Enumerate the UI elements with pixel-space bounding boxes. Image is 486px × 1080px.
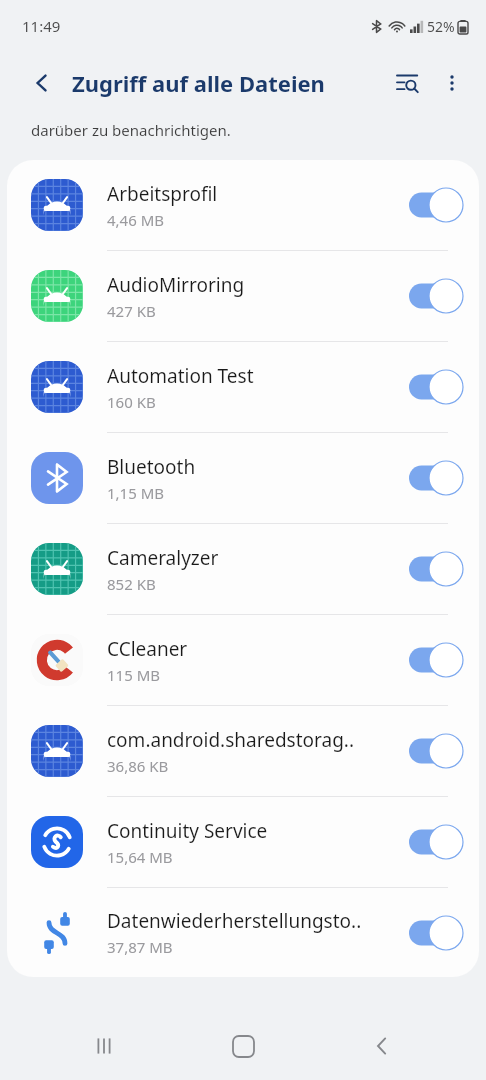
staticText: Bluetooth xyxy=(107,454,196,480)
button[interactable]: Datenwiederherstellungsto.. xyxy=(7,888,479,977)
button[interactable]: Automation Test xyxy=(7,342,479,432)
staticText: 1,15 MB xyxy=(107,483,165,503)
staticText: CCleaner xyxy=(107,636,188,662)
button[interactable]: Toggle AudioMirroring xyxy=(403,272,469,320)
button[interactable]: Search list xyxy=(388,63,428,103)
staticText: 15,64 MB xyxy=(107,847,173,867)
button[interactable]: Back xyxy=(22,63,62,103)
button[interactable]: Toggle Automation Test xyxy=(403,363,469,411)
button[interactable]: Cameralyzer xyxy=(7,524,479,614)
staticText: Zugriff auf alle Dateien xyxy=(72,68,325,98)
button[interactable]: Toggle Continuity Service xyxy=(403,818,469,866)
button[interactable]: Back xyxy=(356,1020,408,1072)
staticText: Datenwiederherstellungsto.. xyxy=(107,908,362,934)
staticText: Cameralyzer xyxy=(107,545,219,571)
staticText: 11:49 xyxy=(22,16,61,36)
staticText: 427 KB xyxy=(107,301,156,321)
button[interactable]: Home xyxy=(217,1020,269,1072)
button[interactable]: Toggle com.android.sharedstorag.. xyxy=(403,727,469,775)
staticText: com.android.sharedstorag.. xyxy=(107,727,355,753)
button[interactable]: Toggle Cameralyzer xyxy=(403,545,469,593)
staticText: Automation Test xyxy=(107,363,254,389)
staticText: 52% xyxy=(427,17,455,36)
button[interactable]: Toggle Datenwiederherstellungsto.. xyxy=(403,909,469,957)
button[interactable]: Recent apps xyxy=(78,1020,130,1072)
button[interactable]: Toggle Bluetooth xyxy=(403,454,469,502)
button[interactable]: AudioMirroring xyxy=(7,251,479,341)
staticText: 852 KB xyxy=(107,574,156,594)
button[interactable]: Toggle Arbeitsprofil xyxy=(403,181,469,229)
staticText: 160 KB xyxy=(107,392,156,412)
staticText: 4,46 MB xyxy=(107,210,165,230)
staticText: 37,87 MB xyxy=(107,937,173,957)
staticText: Continuity Service xyxy=(107,818,268,844)
staticText: darüber zu benachrichtigen. xyxy=(31,120,231,140)
staticText: 36,86 KB xyxy=(107,756,169,776)
button[interactable]: Bluetooth xyxy=(7,433,479,523)
button[interactable]: CCleaner xyxy=(7,615,479,705)
button[interactable]: Toggle CCleaner xyxy=(403,636,469,684)
staticText: AudioMirroring xyxy=(107,272,245,298)
staticText: 115 MB xyxy=(107,665,160,685)
button[interactable]: More options xyxy=(432,63,472,103)
staticText: Arbeitsprofil xyxy=(107,181,218,207)
button[interactable]: Arbeitsprofil xyxy=(7,160,479,250)
button[interactable]: Continuity Service xyxy=(7,797,479,887)
button[interactable]: com.android.sharedstorag.. xyxy=(7,706,479,796)
